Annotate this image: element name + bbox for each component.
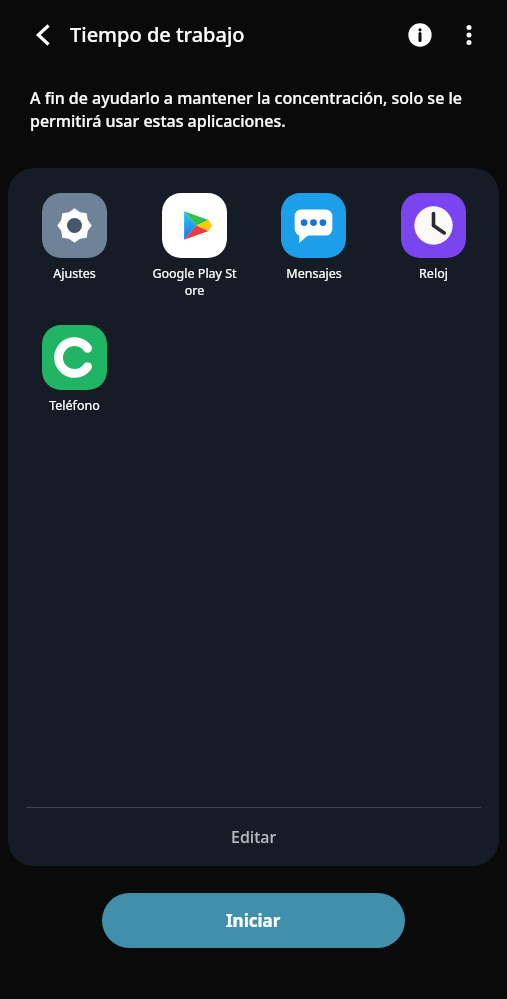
staticText: Reloj xyxy=(419,265,448,282)
staticText: Tiempo de trabajo xyxy=(70,21,245,48)
button[interactable]: Back xyxy=(20,14,62,56)
staticText: Ajustes xyxy=(53,265,96,282)
button[interactable]: Reloj xyxy=(401,193,466,282)
button[interactable]: Information xyxy=(398,13,442,57)
staticText: Editar xyxy=(231,826,277,848)
staticText: Mensajes xyxy=(286,265,342,282)
staticText: Teléfono xyxy=(49,397,100,414)
button[interactable]: Iniciar xyxy=(102,893,405,948)
staticText: Iniciar xyxy=(226,909,281,932)
staticText: A fin de ayudarlo a mantener la concentr… xyxy=(30,87,481,132)
button[interactable]: Teléfono xyxy=(42,325,107,414)
button[interactable]: Google Play St ore xyxy=(152,193,237,298)
button[interactable]: More options xyxy=(449,15,489,55)
button[interactable]: Mensajes xyxy=(281,193,346,282)
staticText: Google Play St ore xyxy=(152,265,237,298)
button[interactable]: Ajustes xyxy=(42,193,107,282)
button[interactable]: Editar xyxy=(8,808,499,866)
